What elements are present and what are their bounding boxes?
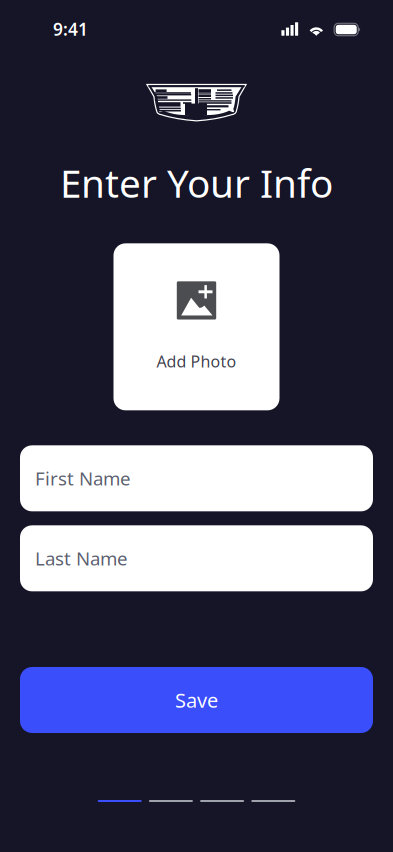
staticText: First Name <box>35 466 131 491</box>
button[interactable]: Save <box>20 667 373 733</box>
button[interactable]: Add Photo <box>113 243 279 410</box>
button[interactable]: Last Name <box>20 525 373 591</box>
staticText: Last Name <box>35 546 128 571</box>
staticText: Save <box>175 687 218 713</box>
staticText: Enter Your Info <box>60 157 333 208</box>
button[interactable]: First Name <box>20 445 373 511</box>
staticText: Add Photo <box>156 350 236 372</box>
staticText: 9:41 <box>53 17 88 40</box>
